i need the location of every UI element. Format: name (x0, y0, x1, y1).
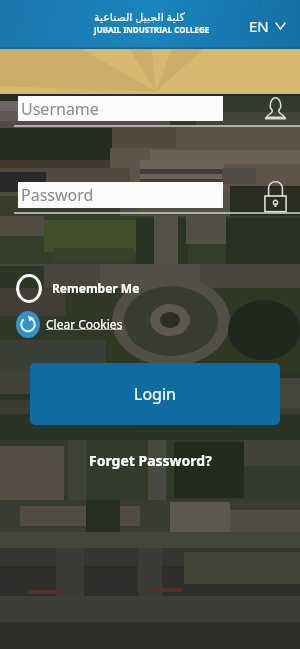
staticText: كلية الجبيل الصناعية (94, 9, 185, 24)
staticText: EN (249, 16, 269, 36)
staticText: Remember Me (52, 280, 140, 296)
staticText: Password (21, 184, 94, 206)
button[interactable]: Remember Me (16, 272, 140, 305)
staticText: JUBAIL INDUSTRIAL COLLEGE (94, 24, 210, 35)
button[interactable]: Forget Password? (0, 448, 300, 472)
button[interactable]: Password (264, 179, 287, 213)
staticText: Username (21, 98, 99, 120)
button[interactable]: Username (18, 96, 223, 121)
button[interactable]: EN (244, 14, 290, 38)
staticText: Login (134, 383, 176, 405)
button[interactable]: Username (264, 95, 287, 123)
button[interactable]: Clear Cookies (16, 310, 123, 339)
button[interactable]: Password (18, 182, 223, 208)
staticText: Clear Cookies (46, 316, 123, 332)
button[interactable]: Login (30, 363, 280, 425)
staticText: Forget Password? (89, 451, 212, 470)
